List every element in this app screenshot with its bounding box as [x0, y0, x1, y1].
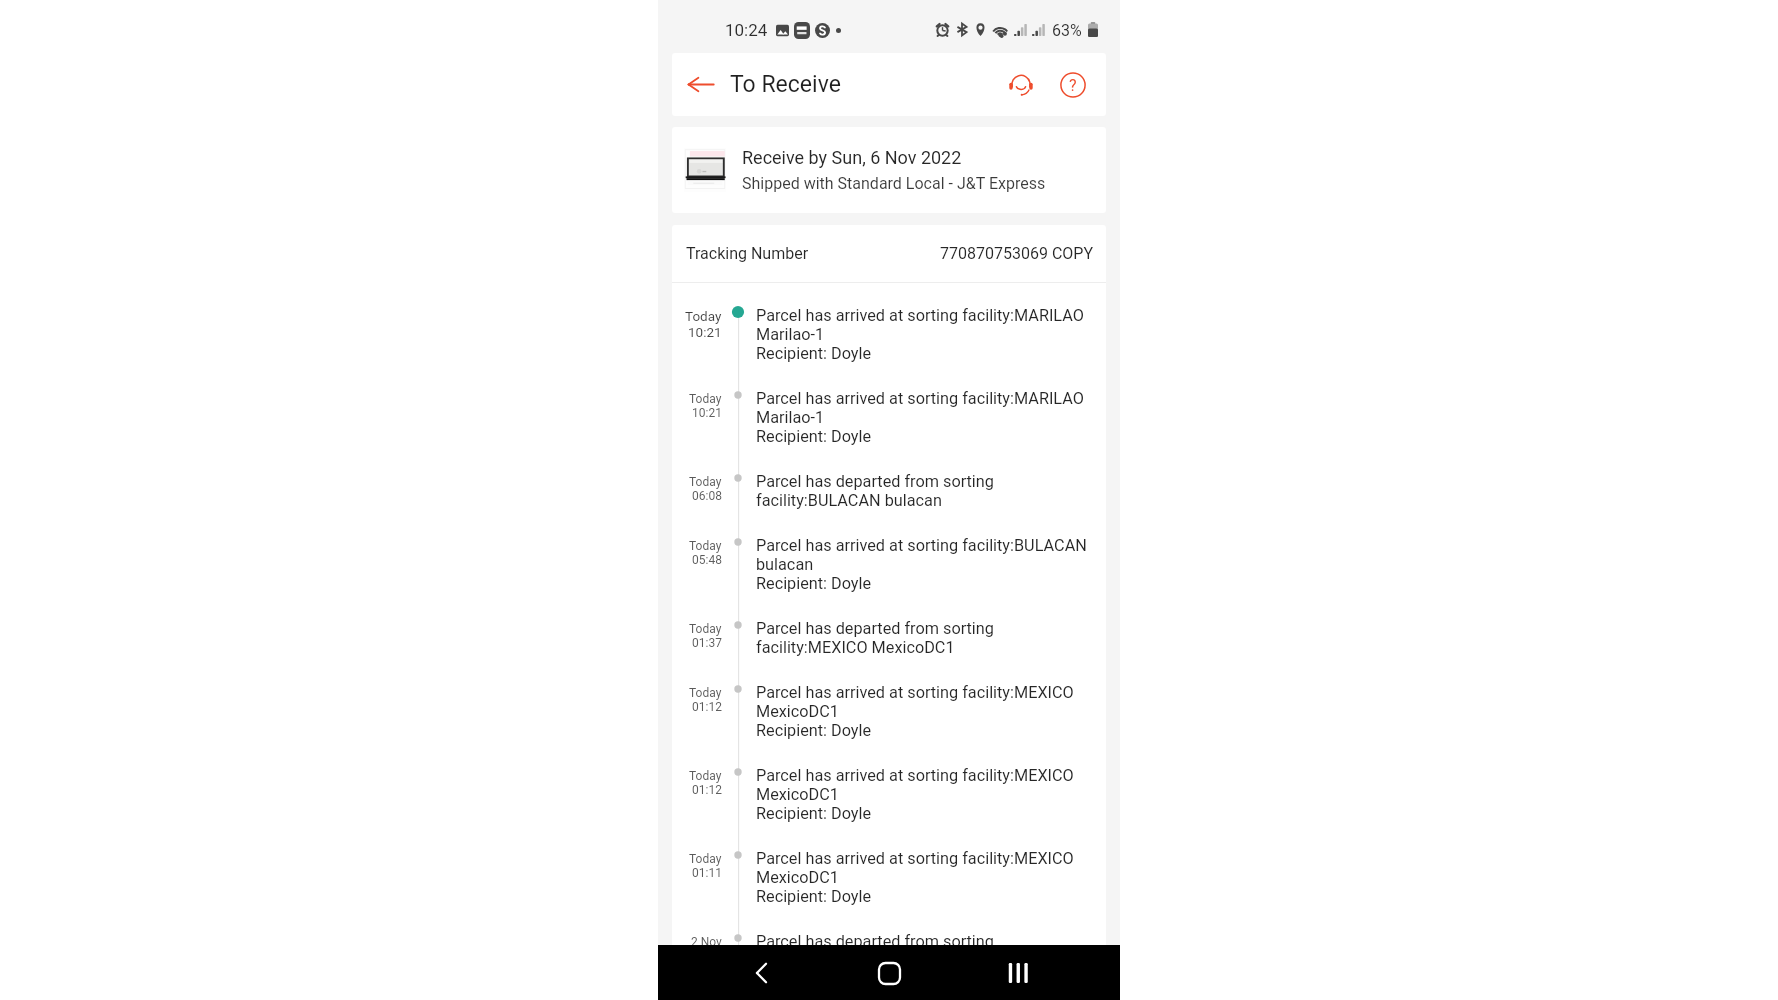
- button[interactable]: Back: [672, 53, 730, 116]
- button[interactable]: Recent apps: [992, 947, 1044, 999]
- button[interactable]: Home: [863, 947, 915, 999]
- staticText: Parcel has arrived at sorting facility:M…: [756, 683, 1074, 740]
- button[interactable]: Help: [1051, 63, 1095, 107]
- staticText: 01:12: [692, 783, 722, 797]
- button[interactable]: Tracking Number: [672, 225, 1106, 282]
- button[interactable]: Back: [735, 947, 787, 999]
- staticText: 10:21: [692, 406, 722, 420]
- staticText: 63%: [1052, 21, 1082, 40]
- staticText: 01:12: [692, 700, 722, 714]
- staticText: Parcel has departed from sorting facilit…: [756, 472, 994, 510]
- staticText: Today: [689, 686, 722, 700]
- staticText: 10:21: [688, 324, 722, 340]
- staticText: Shipped with Standard Local - J&T Expres…: [742, 174, 1046, 193]
- staticText: 2 Nov: [691, 935, 722, 949]
- staticText: Today: [689, 539, 722, 553]
- staticText: Today: [689, 392, 722, 406]
- staticText: 06:08: [692, 489, 722, 503]
- button[interactable]: Chat with support: [999, 63, 1043, 107]
- button[interactable]: Receive by Sun, 6 Nov 2022: [672, 127, 1106, 213]
- staticText: Today: [689, 475, 722, 489]
- staticText: 01:37: [692, 636, 722, 650]
- staticText: Receive by Sun, 6 Nov 2022: [742, 147, 962, 168]
- staticText: Parcel has arrived at sorting facility:M…: [756, 766, 1074, 823]
- staticText: Today: [689, 852, 722, 866]
- staticText: Parcel has departed from sorting facilit…: [756, 932, 994, 970]
- staticText: Today: [685, 308, 722, 324]
- staticText: To Receive: [730, 71, 841, 98]
- staticText: Parcel has arrived at sorting facility:B…: [756, 536, 1087, 593]
- staticText: Parcel has arrived at sorting facility:M…: [756, 389, 1084, 446]
- staticText: Parcel has departed from sorting facilit…: [756, 619, 994, 657]
- staticText: Parcel has arrived at sorting facility:M…: [756, 306, 1084, 363]
- staticText: 10:24: [725, 20, 768, 40]
- staticText: Tracking Number: [686, 244, 809, 263]
- staticText: Today: [689, 769, 722, 783]
- staticText: 05:48: [692, 553, 722, 567]
- staticText: Parcel has arrived at sorting facility:M…: [756, 849, 1074, 906]
- staticText: 770870753069 COPY: [940, 244, 1093, 263]
- staticText: 01:11: [692, 866, 722, 880]
- staticText: Today: [689, 622, 722, 636]
- staticText: ?: [1069, 76, 1077, 95]
